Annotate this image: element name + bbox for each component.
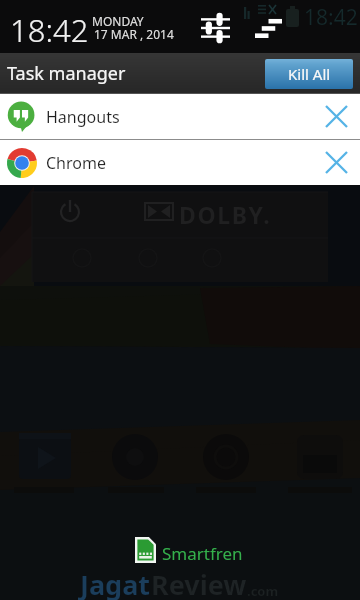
staticText: Hangouts [46, 106, 120, 128]
staticText: Smartfren [162, 542, 243, 565]
staticText: Jagat [80, 566, 151, 600]
button[interactable]: Quick settings [201, 16, 230, 40]
staticText: MONDAY [92, 13, 144, 29]
button[interactable]: Close Chrome [315, 140, 360, 185]
button[interactable]: Close Hangouts [315, 94, 360, 139]
button[interactable]: Hangouts [0, 94, 360, 139]
button[interactable]: Chrome [0, 140, 360, 185]
staticText: Review [151, 566, 247, 600]
staticText: Kill All [288, 64, 331, 84]
button[interactable]: Kill All [265, 59, 353, 89]
staticText: .com [247, 582, 279, 600]
staticText: 17 MAR , 2014 [94, 26, 174, 42]
staticText: 18:42 [10, 9, 89, 51]
staticText: 18:42 [304, 3, 358, 32]
staticText: Chrome [46, 152, 106, 174]
staticText: Task manager [7, 61, 126, 86]
staticText: DOLBY. [179, 199, 272, 230]
button[interactable]: Data usage [255, 18, 282, 37]
